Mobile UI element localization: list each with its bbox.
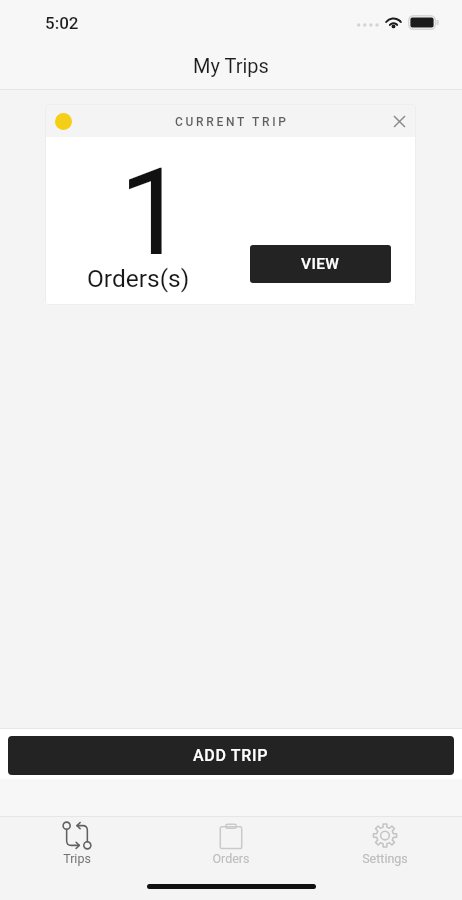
- staticText: VIEW: [301, 255, 340, 273]
- staticText: Settings: [362, 851, 408, 866]
- staticText: My Trips: [193, 54, 269, 77]
- staticText: 5:02: [45, 13, 79, 33]
- staticText: CURRENT TRIP: [175, 115, 289, 129]
- staticText: Orders(s): [87, 264, 190, 293]
- button[interactable]: Trips: [12, 820, 142, 866]
- button[interactable]: Orders: [166, 820, 296, 866]
- button[interactable]: VIEW: [250, 245, 391, 283]
- staticText: Trips: [63, 851, 91, 866]
- staticText: Orders: [212, 851, 250, 866]
- button[interactable]: Settings: [320, 820, 450, 866]
- button[interactable]: Close: [385, 107, 413, 135]
- staticText: 1: [119, 143, 187, 284]
- button[interactable]: ADD TRIP: [8, 736, 454, 775]
- staticText: ADD TRIP: [193, 746, 269, 765]
